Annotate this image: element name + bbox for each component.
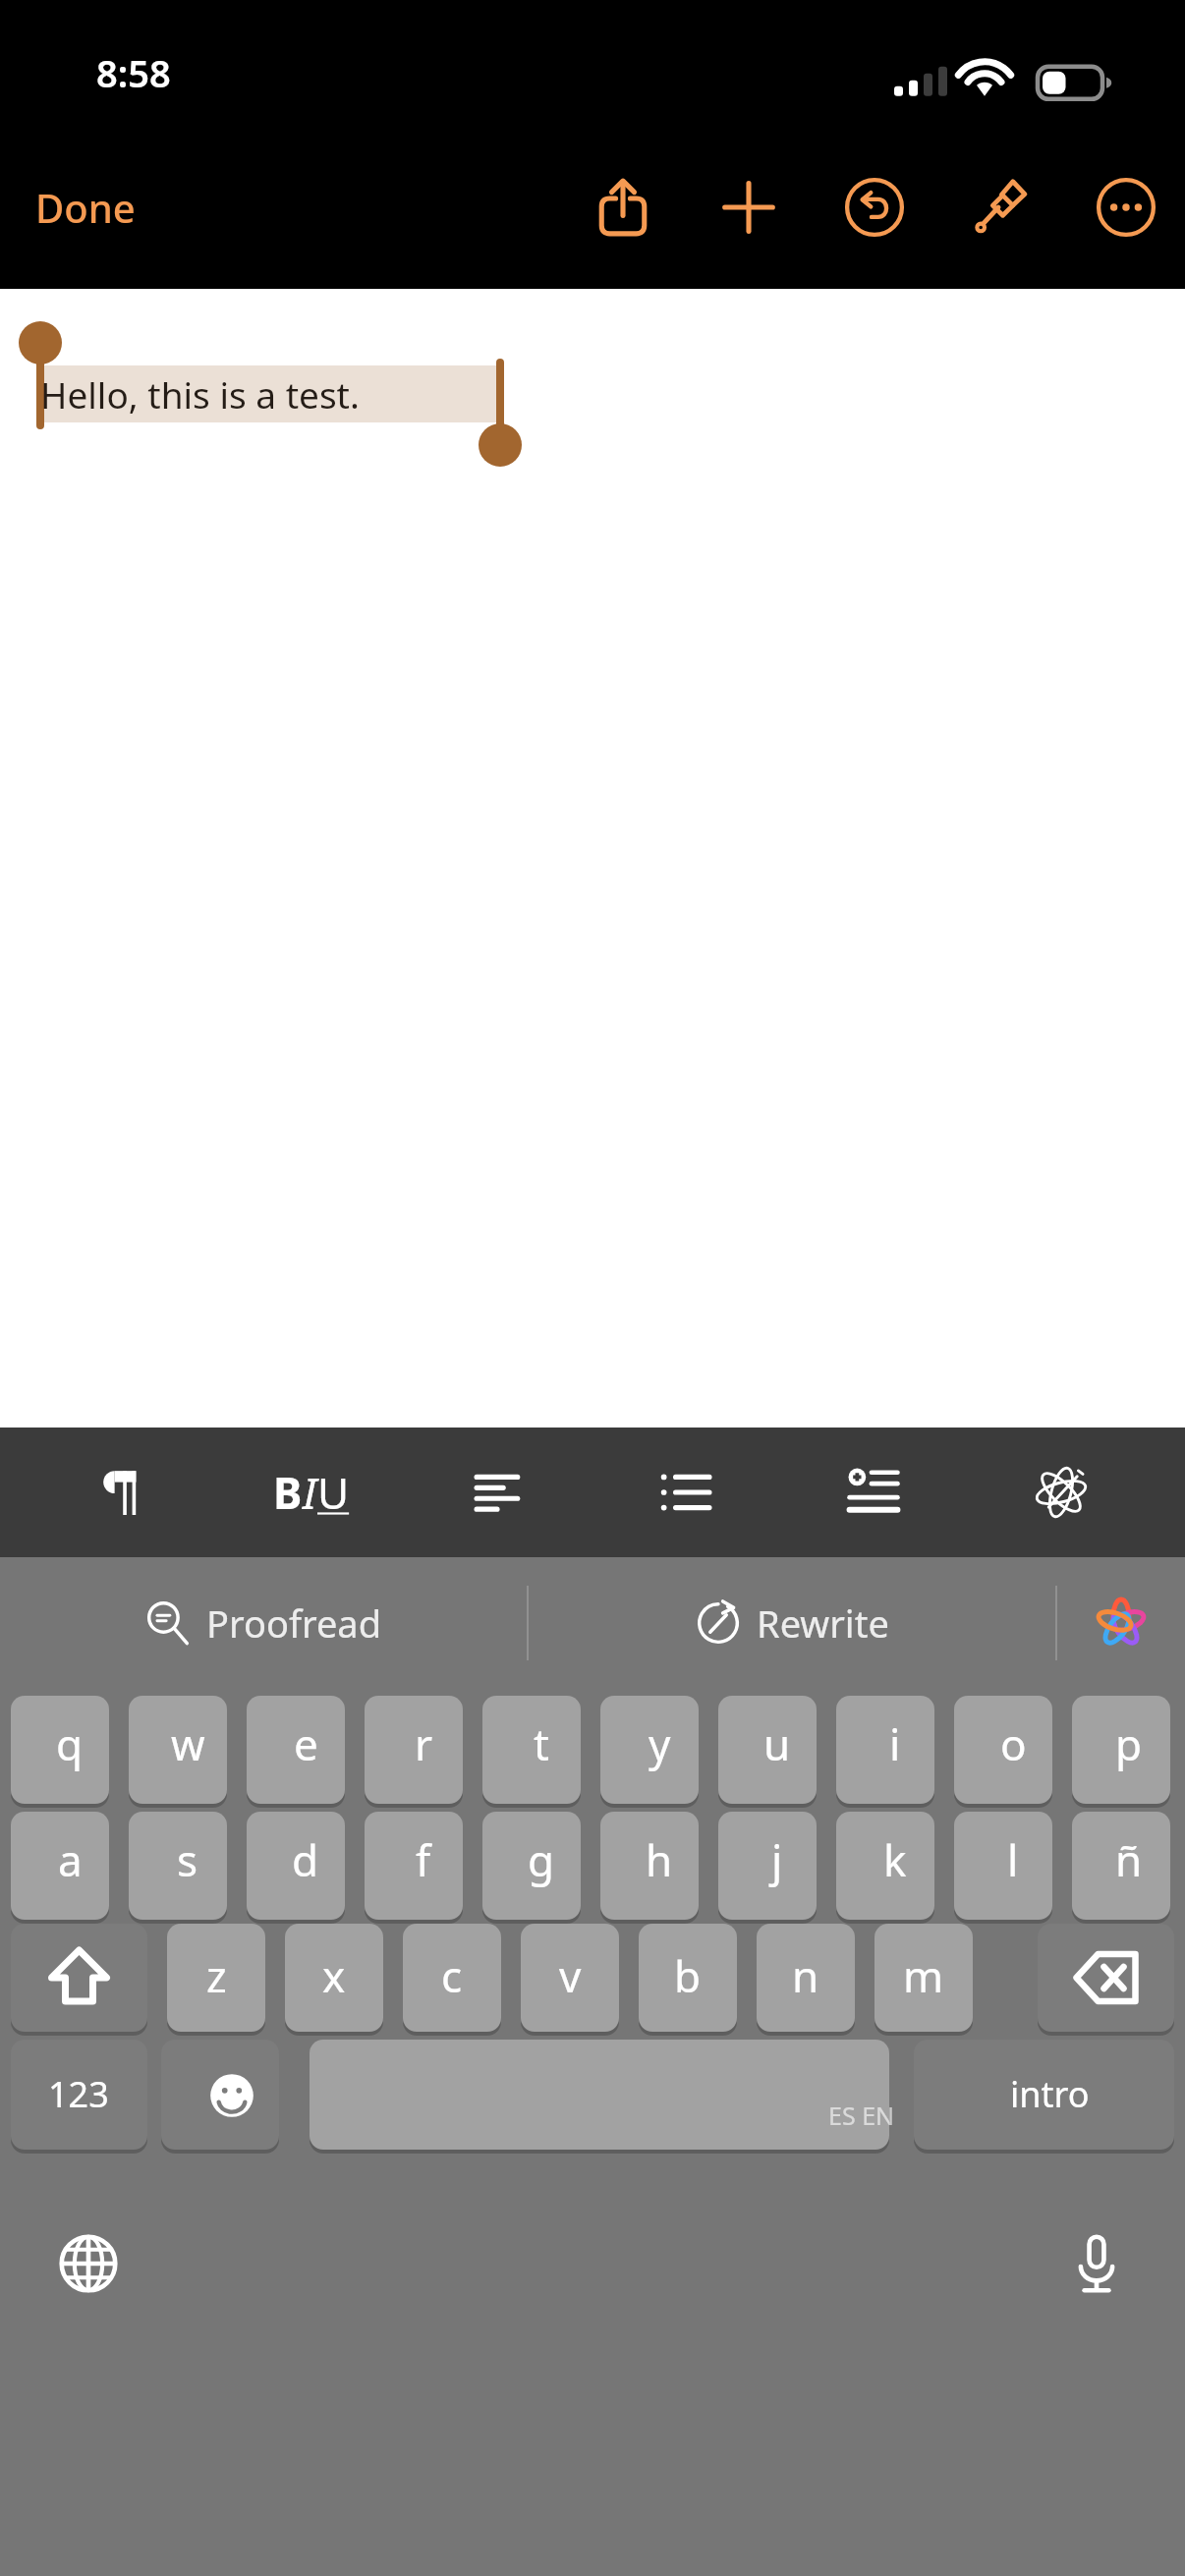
button[interactable]: Bold italic underline xyxy=(248,1433,375,1551)
button[interactable]: Backspace xyxy=(983,1920,1185,2036)
button[interactable]: g xyxy=(482,1804,600,1920)
staticText: B xyxy=(273,1463,303,1522)
button[interactable]: Insert block xyxy=(810,1433,937,1551)
staticText: 123 xyxy=(48,2070,109,2118)
button[interactable]: Paragraph style xyxy=(60,1433,188,1551)
staticText: h xyxy=(646,1830,673,1889)
button[interactable]: v xyxy=(511,1920,629,2036)
button[interactable]: h xyxy=(600,1804,718,1920)
staticText: q xyxy=(56,1714,84,1773)
staticText: Rewrite xyxy=(757,1597,889,1649)
staticText: o xyxy=(1000,1714,1027,1773)
button[interactable]: Undo xyxy=(829,162,920,252)
staticText: v xyxy=(559,1946,582,2005)
staticText: n xyxy=(792,1946,819,2005)
button[interactable]: e xyxy=(247,1688,365,1804)
button[interactable]: More options xyxy=(1081,162,1171,252)
button[interactable]: b xyxy=(629,1920,747,2036)
staticText: s xyxy=(177,1830,198,1889)
staticText: i xyxy=(889,1714,901,1773)
staticText: l xyxy=(1007,1830,1019,1889)
staticText: j xyxy=(771,1830,783,1889)
button[interactable]: k xyxy=(836,1804,954,1920)
button[interactable]: c xyxy=(393,1920,511,2036)
button[interactable]: Lists xyxy=(622,1433,750,1551)
button[interactable]: t xyxy=(482,1688,600,1804)
button[interactable]: Emoji xyxy=(157,2036,306,2156)
button[interactable]: ñ xyxy=(1072,1804,1185,1920)
staticText: t xyxy=(534,1714,549,1773)
staticText: f xyxy=(416,1830,431,1889)
button[interactable]: Markup xyxy=(955,162,1045,252)
button[interactable]: intro xyxy=(915,2036,1185,2156)
staticText: intro xyxy=(1010,2070,1090,2118)
staticText: b xyxy=(674,1946,702,2005)
staticText: Hello, this is a test. xyxy=(40,369,360,419)
button[interactable]: j xyxy=(718,1804,836,1920)
staticText: a xyxy=(58,1830,83,1889)
button[interactable]: d xyxy=(247,1804,365,1920)
button[interactable]: i xyxy=(836,1688,954,1804)
button[interactable]: Apple Intelligence xyxy=(1057,1557,1185,1688)
staticText: x xyxy=(322,1946,346,2005)
staticText: d xyxy=(292,1830,319,1889)
staticText: p xyxy=(1115,1714,1143,1773)
button[interactable]: Space xyxy=(306,2036,915,2156)
button[interactable]: n xyxy=(747,1920,865,2036)
staticText: z xyxy=(206,1946,227,2005)
button[interactable]: Share xyxy=(578,162,668,252)
button[interactable]: Proofread xyxy=(0,1557,527,1688)
button[interactable]: s xyxy=(129,1804,247,1920)
button[interactable]: m xyxy=(865,1920,983,2036)
button[interactable]: z xyxy=(157,1920,275,2036)
staticText: ñ xyxy=(1115,1830,1143,1889)
staticText: 8:58 xyxy=(96,47,171,98)
staticText: e xyxy=(294,1714,318,1773)
button[interactable]: r xyxy=(365,1688,482,1804)
staticText: g xyxy=(528,1830,555,1889)
staticText: U xyxy=(317,1463,350,1522)
button[interactable]: Dictate xyxy=(1047,2214,1146,2313)
button[interactable]: Apple Intelligence xyxy=(997,1433,1125,1551)
staticText: m xyxy=(903,1946,944,2005)
staticText: Done xyxy=(35,181,136,234)
button[interactable]: a xyxy=(11,1804,129,1920)
button[interactable]: u xyxy=(718,1688,836,1804)
staticText: k xyxy=(883,1830,907,1889)
button[interactable]: x xyxy=(275,1920,393,2036)
button[interactable]: f xyxy=(365,1804,482,1920)
button[interactable]: 123 xyxy=(0,2036,157,2156)
staticText: u xyxy=(763,1714,791,1773)
staticText: r xyxy=(415,1714,433,1773)
button[interactable]: q xyxy=(11,1688,129,1804)
button[interactable]: Shift xyxy=(0,1920,157,2036)
button[interactable]: o xyxy=(954,1688,1072,1804)
button[interactable]: w xyxy=(129,1688,247,1804)
button[interactable]: Add xyxy=(704,162,794,252)
button[interactable]: Text alignment xyxy=(435,1433,563,1551)
button[interactable]: y xyxy=(600,1688,718,1804)
staticText: ES EN xyxy=(828,2099,895,2132)
button[interactable]: l xyxy=(954,1804,1072,1920)
button[interactable]: Done xyxy=(18,169,153,246)
staticText: y xyxy=(649,1714,671,1773)
button[interactable]: p xyxy=(1072,1688,1185,1804)
staticText: Proofread xyxy=(206,1597,382,1649)
staticText: w xyxy=(171,1714,205,1773)
button[interactable]: Rewrite xyxy=(529,1557,1055,1688)
staticText: c xyxy=(441,1946,463,2005)
button[interactable]: Change keyboard xyxy=(39,2214,138,2313)
staticText: I xyxy=(303,1463,317,1522)
